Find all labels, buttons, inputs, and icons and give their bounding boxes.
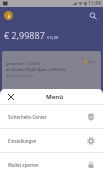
button[interactable]: Wallet sperren	[0, 153, 103, 176]
button[interactable]: Account	[4, 11, 13, 20]
staticText: € 2,99887	[4, 29, 45, 41]
button[interactable]: Sicherheits-Center	[0, 105, 103, 128]
staticText: € 0,00	[47, 35, 59, 40]
staticText: Sicherheits-Center	[8, 114, 47, 120]
staticText: 11:49	[88, 0, 101, 7]
button[interactable]: gesendet 1,00000	[2, 51, 101, 95]
button[interactable]: Einstellungen	[0, 129, 103, 152]
staticText: gesendet 1,00000	[6, 61, 40, 66]
staticText: Menü	[46, 93, 64, 101]
button[interactable]: Close	[5, 91, 17, 103]
staticText: an CbrBwqTfgR+Npw...LkM2x5z	[6, 67, 66, 72]
staticText: Wallet sperren	[8, 162, 39, 168]
staticText: Abgeschlossen	[6, 73, 35, 78]
staticText: 3 d	[88, 59, 94, 64]
button[interactable]: Search	[87, 10, 99, 22]
staticText: Einstellungen	[8, 138, 37, 144]
